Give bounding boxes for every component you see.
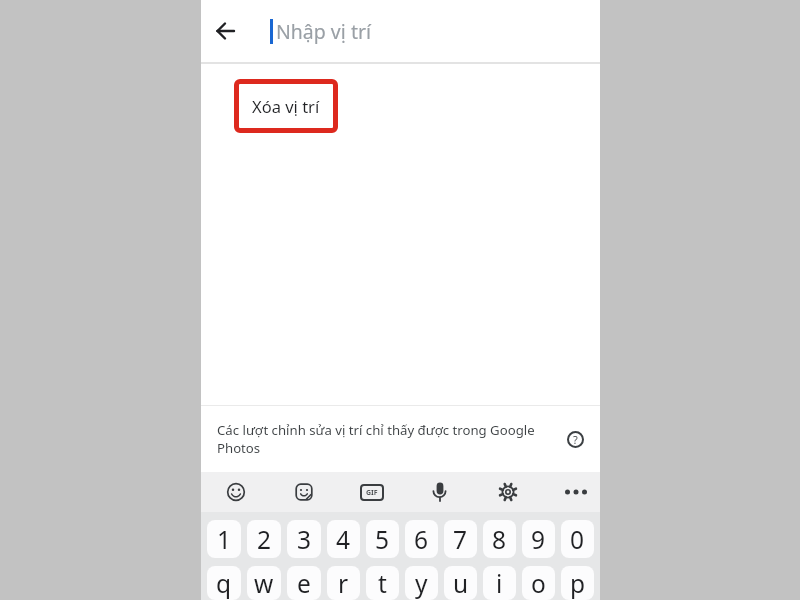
staticText: 7 — [453, 523, 468, 556]
button[interactable]: 2 — [247, 520, 281, 558]
button[interactable]: ? — [567, 431, 584, 448]
button[interactable] — [284, 472, 324, 512]
staticText: e — [297, 567, 311, 600]
staticText: u — [453, 567, 469, 600]
button[interactable]: e — [287, 566, 321, 600]
staticText: 2 — [257, 523, 272, 556]
staticText: o — [531, 567, 546, 600]
staticText: Các lượt chỉnh sửa vị trí chỉ thấy được … — [217, 421, 535, 439]
button[interactable]: t — [366, 566, 399, 600]
staticText: y — [415, 567, 428, 600]
staticText: t — [378, 567, 387, 600]
button[interactable]: y — [405, 566, 438, 600]
staticText: Xóa vị trí — [252, 95, 320, 117]
button[interactable] — [420, 472, 460, 512]
button[interactable]: r — [327, 566, 360, 600]
button[interactable]: 1 — [207, 520, 241, 558]
staticText: 5 — [375, 523, 390, 556]
button[interactable]: Xóa vị trí — [234, 79, 338, 133]
button[interactable]: 6 — [405, 520, 438, 558]
button[interactable]: GIF — [352, 472, 392, 512]
staticText: p — [570, 567, 586, 600]
button[interactable]: 7 — [444, 520, 477, 558]
button[interactable]: 3 — [287, 520, 321, 558]
button[interactable]: 0 — [561, 520, 594, 558]
staticText: 9 — [531, 523, 546, 556]
button[interactable]: 8 — [483, 520, 516, 558]
staticText: Photos — [217, 439, 261, 457]
button[interactable]: q — [207, 566, 241, 600]
button[interactable] — [556, 472, 596, 512]
staticText: 4 — [336, 523, 351, 556]
staticText: 3 — [297, 523, 312, 556]
staticText: ? — [573, 432, 578, 447]
button[interactable]: u — [444, 566, 477, 600]
button[interactable] — [488, 472, 528, 512]
button[interactable]: i — [483, 566, 516, 600]
button[interactable]: 5 — [366, 520, 399, 558]
button[interactable]: w — [247, 566, 281, 600]
staticText: GIF — [366, 488, 378, 498]
button[interactable]: o — [522, 566, 555, 600]
staticText: q — [216, 567, 232, 600]
button[interactable]: 9 — [522, 520, 555, 558]
staticText: i — [496, 567, 503, 600]
staticText: r — [338, 567, 349, 600]
staticText: 6 — [414, 523, 429, 556]
staticText: 8 — [492, 523, 507, 556]
staticText: 1 — [217, 523, 232, 556]
button[interactable] — [216, 472, 256, 512]
staticText: 0 — [570, 523, 585, 556]
staticText: Nhập vị trí — [276, 18, 372, 45]
button[interactable] — [201, 7, 249, 55]
staticText: w — [254, 567, 274, 600]
button[interactable]: p — [561, 566, 594, 600]
button[interactable]: 4 — [327, 520, 360, 558]
